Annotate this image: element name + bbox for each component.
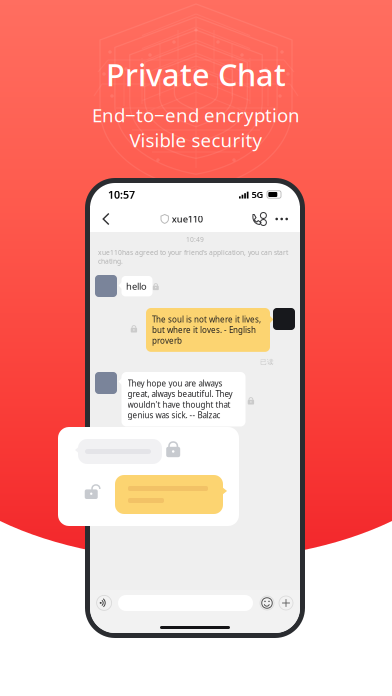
staticText: Visible security [129, 127, 262, 152]
button[interactable]: Emoji [259, 595, 275, 611]
staticText: Private Chat [106, 54, 286, 95]
staticText: The soul is not where it lives, but wher… [152, 314, 261, 346]
button[interactable]: More [270, 210, 293, 228]
staticText: xue110 [172, 213, 203, 225]
staticText: 10:49 [186, 235, 204, 244]
staticText: xue110has agreed to your friend's applic… [98, 248, 288, 266]
staticText: hello [126, 280, 147, 292]
button[interactable]: Back [97, 206, 115, 231]
staticText: 5G [251, 188, 263, 201]
staticText: 已读 [260, 358, 274, 366]
button[interactable]: More actions [278, 595, 294, 611]
button[interactable]: Call [248, 212, 270, 226]
button[interactable]: Voice message [96, 594, 113, 611]
staticText: End−to−end encryption [92, 103, 300, 127]
staticText: They hope you are always great, always b… [127, 378, 232, 420]
staticText: 10:57 [108, 187, 135, 202]
